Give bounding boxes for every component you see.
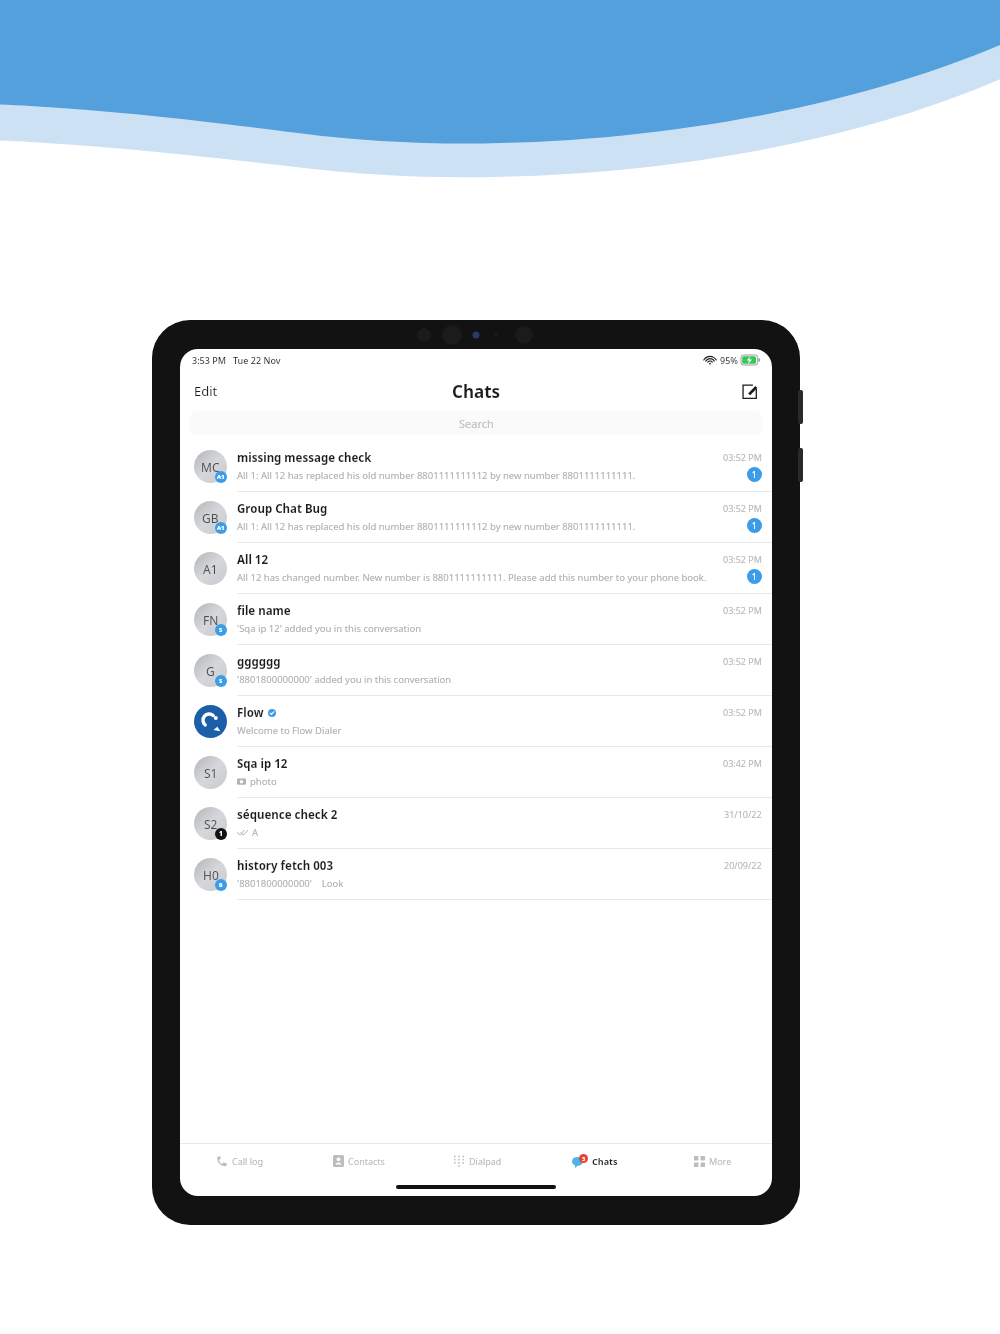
staticText: Welcome to Flow Dialer xyxy=(237,724,342,737)
button[interactable]: 3 xyxy=(536,1144,654,1178)
staticText: S xyxy=(219,626,223,634)
staticText: Edit xyxy=(194,382,218,400)
staticText: 3 xyxy=(582,1155,586,1162)
button[interactable]: Dialpad xyxy=(418,1144,536,1178)
staticText: Search xyxy=(459,416,494,431)
staticText: Chats xyxy=(592,1155,618,1167)
staticText: S1 xyxy=(204,765,218,781)
staticText: 03:52 PM xyxy=(723,604,762,616)
staticText: 1 xyxy=(219,829,224,839)
button[interactable]: Contacts xyxy=(299,1144,418,1178)
staticText: G xyxy=(206,663,215,679)
staticText: 1 xyxy=(752,520,757,531)
button[interactable]: H0 xyxy=(180,849,772,900)
staticText: MC xyxy=(201,459,220,475)
button[interactable]: Flow xyxy=(180,696,772,747)
staticText: A xyxy=(252,826,259,839)
staticText: 95% xyxy=(720,354,738,366)
staticText: A1 xyxy=(217,524,225,532)
staticText: history fetch 003 xyxy=(237,858,334,874)
staticText: Call log xyxy=(232,1155,264,1167)
staticText: 'Sqa ip 12' added you in this conversati… xyxy=(237,622,422,635)
button[interactable]: MC xyxy=(180,441,772,492)
button[interactable]: GB xyxy=(180,492,772,543)
button[interactable]: S2 xyxy=(180,798,772,849)
staticText: S2 xyxy=(204,816,218,832)
staticText: GB xyxy=(202,510,219,526)
staticText: Flow xyxy=(237,705,264,721)
button[interactable]: Compose new message xyxy=(727,377,772,406)
staticText: S xyxy=(219,677,223,685)
button[interactable]: Edit xyxy=(180,376,232,406)
staticText: 3:53 PM xyxy=(192,354,226,366)
staticText: missing message check xyxy=(237,450,372,466)
button[interactable]: A1 xyxy=(180,543,772,594)
button[interactable]: More xyxy=(654,1144,772,1178)
staticText: file name xyxy=(237,603,291,619)
staticText: 03:52 PM xyxy=(723,502,762,514)
staticText: Group Chat Bug xyxy=(237,501,328,517)
staticText: Dialpad xyxy=(469,1155,502,1167)
staticText: Chats xyxy=(452,380,501,403)
staticText: A1 xyxy=(217,473,225,481)
staticText: '8801800000000' added you in this conver… xyxy=(237,673,452,686)
staticText: Contacts xyxy=(348,1155,385,1167)
staticText: Sqa ip 12 xyxy=(237,756,288,772)
button[interactable]: S1 xyxy=(180,747,772,798)
staticText: 03:52 PM xyxy=(723,655,762,667)
button[interactable]: FN xyxy=(180,594,772,645)
staticText: 20/09/22 xyxy=(724,859,762,871)
staticText: '8801800000000' Look xyxy=(237,877,344,890)
button[interactable]: Call log xyxy=(180,1144,299,1178)
button[interactable]: Search xyxy=(190,411,762,435)
staticText: 1 xyxy=(752,571,757,582)
staticText: 03:52 PM xyxy=(723,553,762,565)
staticText: More xyxy=(709,1155,732,1167)
staticText: H0 xyxy=(203,867,219,883)
staticText: Tue 22 Nov xyxy=(233,354,281,366)
staticText: A1 xyxy=(203,561,218,577)
staticText: photo xyxy=(250,775,277,788)
staticText: 03:52 PM xyxy=(723,706,762,718)
staticText: FN xyxy=(203,612,219,628)
staticText: All 1: All 12 has replaced his old numbe… xyxy=(237,520,636,533)
staticText: All 12 has changed number. New number is… xyxy=(237,571,707,584)
staticText: 03:42 PM xyxy=(723,757,762,769)
staticText: 1 xyxy=(752,469,757,480)
staticText: All 1: All 12 has replaced his old numbe… xyxy=(237,469,636,482)
staticText: 31/10/22 xyxy=(724,808,762,820)
staticText: séquence check 2 xyxy=(237,807,338,823)
staticText: All 12 xyxy=(237,552,268,568)
staticText: 03:52 PM xyxy=(723,451,762,463)
staticText: gggggg xyxy=(237,654,281,670)
staticText: 8 xyxy=(219,881,223,889)
button[interactable]: G xyxy=(180,645,772,696)
